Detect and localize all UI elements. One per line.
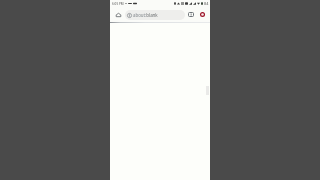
button[interactable]: Home [113,9,124,20]
button[interactable]: More options [197,9,208,20]
button[interactable]: about:blank [125,10,185,20]
button[interactable]: Switch tabs [185,9,196,20]
staticText: 84 [204,1,209,6]
staticText: about:blank [133,12,158,18]
staticText: 6:05 PM [112,2,124,6]
